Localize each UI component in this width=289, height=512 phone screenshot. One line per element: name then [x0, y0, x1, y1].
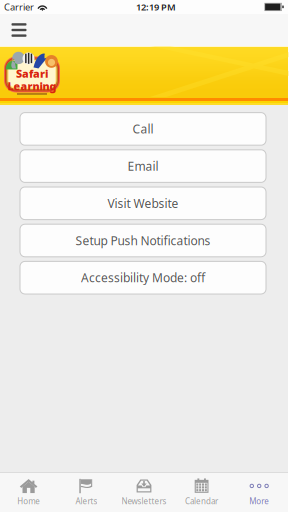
staticText: Call [132, 121, 153, 137]
staticText: Newsletters [121, 496, 166, 506]
button[interactable]: Setup Push Notifications [20, 224, 266, 257]
button[interactable]: More [230, 473, 288, 512]
staticText: Email [127, 158, 158, 174]
staticText: 12:19 PM [136, 1, 176, 13]
staticText: Calendar [185, 496, 218, 506]
staticText: Home [17, 496, 40, 506]
button[interactable]: Alerts [58, 473, 115, 512]
staticText: Safari [16, 66, 48, 81]
button[interactable]: Visit Website [20, 187, 266, 220]
button[interactable]: Home [0, 473, 58, 512]
staticText: Alerts [75, 496, 97, 506]
staticText: Learning [7, 79, 56, 93]
button[interactable]: Call [20, 113, 266, 145]
staticText: Visit Website [107, 195, 178, 211]
button[interactable]: Newsletters [115, 473, 173, 512]
staticText: Accessibility Mode: off [81, 270, 205, 286]
button[interactable]: Calendar [173, 473, 230, 512]
button[interactable]: Email [20, 150, 266, 182]
staticText: Setup Push Notifications [75, 232, 210, 248]
staticText: Carrier [4, 1, 34, 13]
button[interactable]: Menu [2, 14, 36, 46]
button[interactable]: Accessibility Mode: off [20, 261, 266, 294]
staticText: More [249, 496, 269, 506]
